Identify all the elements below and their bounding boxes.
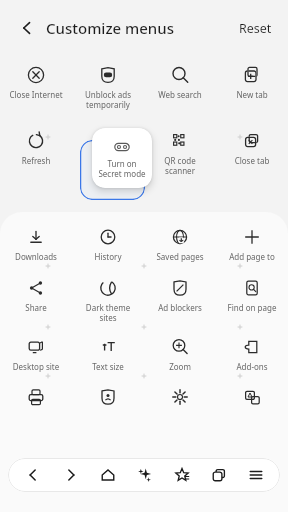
button[interactable]: QR code scanner	[144, 128, 216, 176]
staticText: Add page to	[216, 251, 288, 262]
staticText: Desktop site	[0, 361, 72, 372]
staticText: Ad blockers	[144, 302, 216, 313]
button[interactable]: Add page to	[216, 224, 288, 262]
button[interactable]: Refresh	[0, 128, 72, 166]
staticText: Turn on Secret mode	[98, 158, 146, 179]
button[interactable]: Back	[14, 15, 40, 41]
staticText: Refresh	[0, 155, 72, 166]
button[interactable]: Close tab	[216, 128, 288, 166]
staticText: History	[72, 251, 144, 262]
button[interactable]: Back	[14, 458, 52, 492]
button[interactable]: Dark theme sites	[72, 275, 144, 323]
staticText: Find on page	[216, 302, 288, 313]
button[interactable]: Bookmarks	[163, 458, 200, 492]
button[interactable]: Add-ons	[216, 334, 288, 372]
button[interactable]: Menu	[237, 458, 274, 492]
staticText: Web search	[144, 89, 216, 100]
button[interactable]: History	[72, 224, 144, 262]
staticText: Dark theme sites	[72, 302, 144, 323]
staticText: Reset	[239, 20, 272, 37]
button[interactable]: Reset	[237, 14, 274, 43]
staticText: Close Internet	[0, 89, 72, 100]
staticText: New tab	[216, 89, 288, 100]
button[interactable]: Downloads	[0, 224, 72, 262]
button[interactable]	[216, 384, 288, 422]
button[interactable]: Find on page	[216, 275, 288, 313]
staticText: Share	[0, 302, 72, 313]
button[interactable]: Tabs	[200, 458, 237, 492]
button[interactable]	[0, 384, 72, 422]
button[interactable]: Home	[89, 458, 126, 492]
button[interactable]: Zoom	[144, 334, 216, 372]
button[interactable]: Desktop site	[0, 334, 72, 372]
staticText: Downloads	[0, 251, 72, 262]
button[interactable]: Web search	[144, 62, 216, 100]
staticText: Close tab	[216, 155, 288, 166]
button[interactable]: Forward	[52, 458, 89, 492]
staticText: Unblock ads temporarily	[72, 89, 144, 110]
staticText: Add-ons	[216, 361, 288, 372]
button[interactable]: Close Internet	[0, 62, 72, 100]
button[interactable]	[72, 384, 144, 422]
staticText: Text size	[72, 361, 144, 372]
button[interactable]: Text size	[72, 334, 144, 372]
button[interactable]	[144, 384, 216, 422]
button[interactable]: Share	[0, 275, 72, 313]
button[interactable]: Turn on Secret mode	[92, 128, 152, 188]
staticText: Zoom	[144, 361, 216, 372]
staticText: Saved pages	[144, 251, 216, 262]
button[interactable]: AI assistant	[126, 458, 163, 492]
button[interactable]: Unblock ads temporarily	[72, 62, 144, 110]
button[interactable]: New tab	[216, 62, 288, 100]
button[interactable]: Saved pages	[144, 224, 216, 262]
button[interactable]: Ad blockers	[144, 275, 216, 313]
staticText: QR code scanner	[144, 155, 216, 176]
staticText: Customize menus	[46, 18, 174, 38]
